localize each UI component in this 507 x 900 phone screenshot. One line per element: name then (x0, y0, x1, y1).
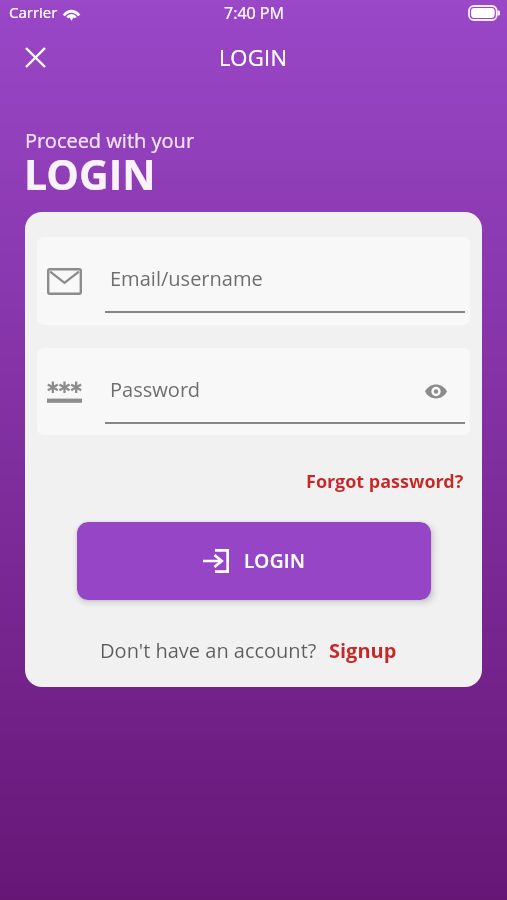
staticText: Email/username (110, 265, 263, 292)
button[interactable]: LOGIN (77, 522, 431, 600)
button[interactable]: Password (37, 348, 470, 435)
staticText: Carrier (9, 2, 58, 22)
staticText: Forgot password? (306, 469, 464, 494)
staticText: Signup (329, 637, 397, 664)
staticText: 7:40 PM (224, 2, 284, 24)
button[interactable]: Forgot password? (303, 465, 467, 498)
button[interactable]: Show password (415, 348, 456, 435)
staticText: Don't have an account? (100, 637, 317, 664)
button[interactable]: Signup (329, 637, 397, 664)
staticText: LOGIN (24, 146, 156, 202)
staticText: Password (110, 376, 200, 403)
button[interactable]: Close (13, 42, 57, 72)
staticText: Proceed with your (25, 127, 195, 154)
staticText: LOGIN (244, 548, 306, 574)
button[interactable]: Email/username (37, 237, 470, 325)
staticText: LOGIN (219, 42, 288, 72)
